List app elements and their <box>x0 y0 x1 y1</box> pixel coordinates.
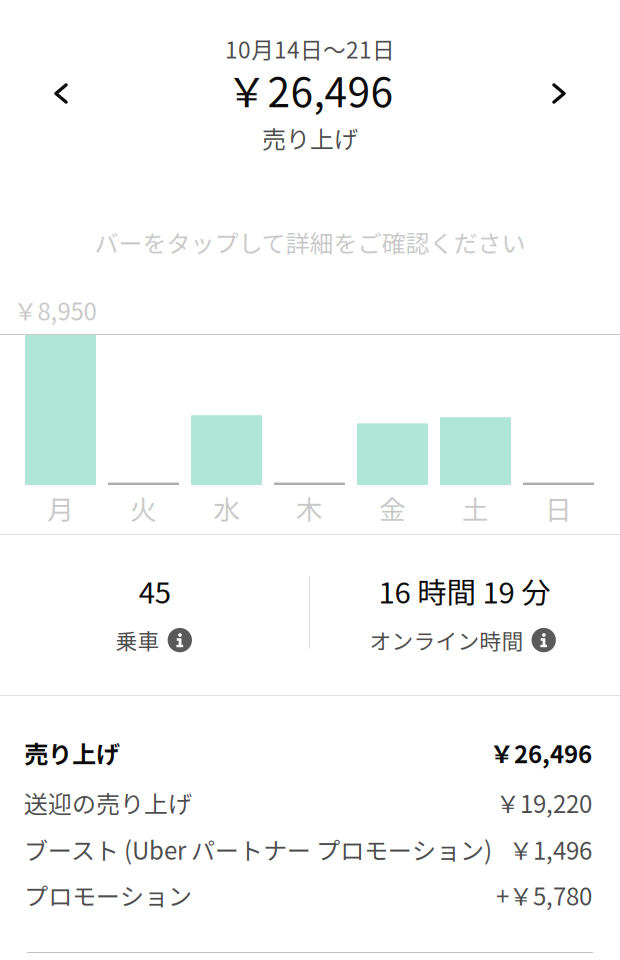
staticText: 水 <box>213 489 240 527</box>
staticText: ブースト (Uber パートナー プロモーション) <box>24 832 492 867</box>
staticText: 売り上げ <box>262 120 358 155</box>
staticText: 売り上げ <box>24 735 120 770</box>
staticText: ￥26,496 <box>490 735 592 770</box>
staticText: ￥1,496 <box>509 832 592 867</box>
staticText: 火 <box>130 489 157 527</box>
staticText: 月 <box>47 489 74 527</box>
staticText: 日 <box>545 489 572 527</box>
staticText: 木 <box>296 489 323 527</box>
staticText: 45 <box>139 569 171 612</box>
staticText: 金 <box>379 489 406 527</box>
staticText: バーをタップして詳細をご確認ください <box>94 225 525 259</box>
button[interactable]: Previous week <box>13 42 109 144</box>
staticText: 10月14日〜21日 <box>225 32 395 65</box>
staticText: 土 <box>462 489 489 527</box>
staticText: ￥19,220 <box>496 785 592 820</box>
button[interactable]: Next week <box>511 42 607 144</box>
staticText: ￥26,496 <box>226 60 393 119</box>
staticText: 送迎の売り上げ <box>24 785 192 820</box>
staticText: +￥5,780 <box>496 878 592 912</box>
staticText: 16 時間 19 分 <box>379 569 551 612</box>
staticText: ￥8,950 <box>14 293 97 327</box>
staticText: 乗車 <box>116 624 160 656</box>
staticText: オンライン時間 <box>369 624 523 656</box>
staticText: プロモーション <box>24 878 192 912</box>
